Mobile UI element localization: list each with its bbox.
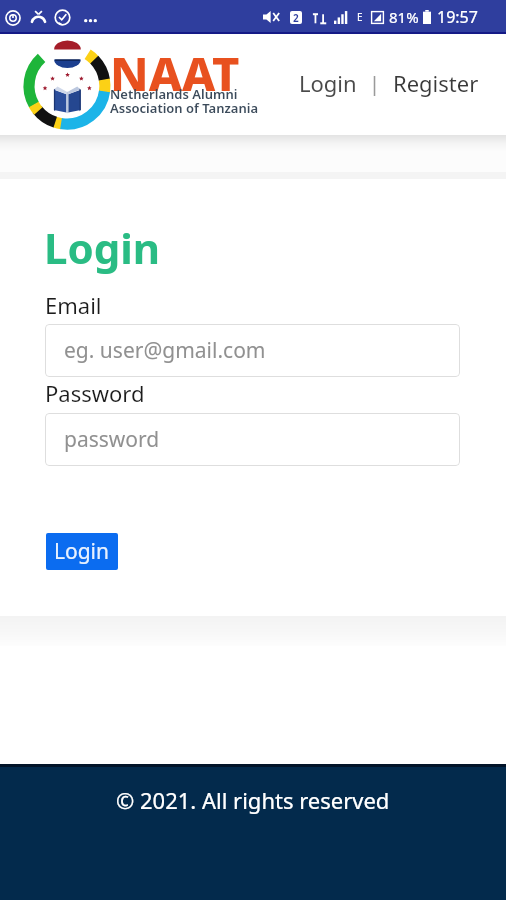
button[interactable]: Login [293, 60, 363, 106]
button[interactable]: Login [46, 533, 118, 570]
staticText: Login [44, 219, 161, 276]
staticText: © 2021. All rights reserved [116, 785, 390, 815]
button[interactable]: password [45, 413, 460, 466]
staticText: Password [45, 378, 145, 408]
staticText: password [64, 425, 160, 454]
staticText: 19:57 [437, 6, 478, 28]
staticText: Email [45, 290, 102, 320]
other: Mobile data [312, 10, 327, 24]
button[interactable]: Register [387, 60, 485, 106]
staticText: E [357, 10, 363, 24]
staticText: Netherlands Alumni [110, 85, 238, 103]
other: NAAT logo [20, 38, 113, 131]
staticText: eg. user@gmail.com [64, 336, 266, 365]
other: Sound muted [263, 10, 280, 24]
staticText: Register [393, 68, 479, 98]
staticText: Login [54, 537, 110, 566]
other: Second SIM signal [371, 11, 384, 24]
other: Signal strength [334, 11, 349, 24]
other: Battery 81 percent [423, 10, 431, 24]
staticText: NAAT [110, 41, 240, 105]
staticText: 81% [389, 7, 419, 27]
staticText: Login [299, 68, 357, 98]
staticText: Association of Tanzania [110, 99, 258, 117]
other: Alarm [5, 10, 21, 26]
other: Message [54, 9, 71, 26]
other: More notifications [84, 12, 97, 24]
button[interactable]: eg. user@gmail.com [45, 324, 460, 377]
staticText: | [369, 70, 381, 97]
staticText: 2 [293, 11, 299, 24]
other: Missed call [30, 9, 47, 26]
